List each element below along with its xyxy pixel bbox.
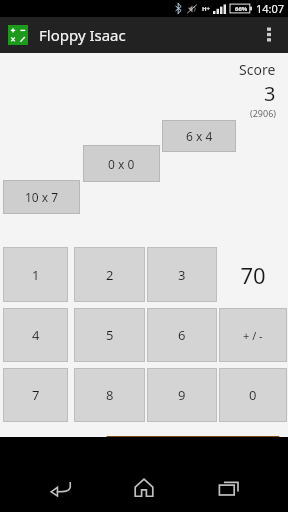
staticText: Score (239, 60, 276, 79)
staticText: 7 (32, 386, 40, 404)
button[interactable]: 2 (74, 247, 145, 302)
button[interactable]: 3 (147, 247, 217, 302)
button[interactable]: 10 x 7 (3, 180, 80, 214)
button[interactable]: 7 (3, 368, 68, 422)
staticText: 66% (235, 5, 248, 13)
staticText: (2906) (250, 107, 276, 119)
button[interactable]: More options (256, 22, 282, 48)
button[interactable]: Back (38, 464, 84, 510)
staticText: 70 (240, 260, 266, 290)
button[interactable]: 6 (147, 308, 217, 362)
staticText: Floppy Isaac (39, 25, 126, 45)
staticText: 9 (178, 386, 186, 404)
staticText: 3 (178, 266, 186, 284)
staticText: 1 (32, 266, 40, 284)
staticText: 0 (249, 386, 257, 404)
button[interactable]: 8 (74, 368, 145, 422)
staticText: 5 (106, 326, 114, 344)
button[interactable]: 4 (3, 308, 68, 362)
button[interactable]: Recent apps (205, 464, 251, 510)
button[interactable]: Home (121, 464, 167, 510)
staticText: 14:07 (256, 1, 285, 16)
staticText: 6 (178, 326, 186, 344)
button[interactable]: 9 (147, 368, 217, 422)
button[interactable]: + / - (219, 308, 287, 362)
button[interactable]: 5 (74, 308, 145, 362)
staticText: 4 (32, 326, 40, 344)
staticText: 6 x 4 (186, 128, 213, 144)
button[interactable]: 1 (3, 247, 68, 302)
staticText: + / - (243, 328, 263, 343)
staticText: H+ (202, 5, 211, 13)
staticText: 8 (106, 386, 114, 404)
staticText: 2 (106, 266, 114, 284)
button[interactable]: 0 (219, 368, 287, 422)
staticText: 3 (264, 80, 276, 107)
button[interactable]: 6 x 4 (162, 120, 236, 152)
staticText: 0 x 0 (108, 156, 135, 172)
staticText: 10 x 7 (25, 189, 59, 205)
button[interactable]: 0 x 0 (83, 145, 160, 182)
